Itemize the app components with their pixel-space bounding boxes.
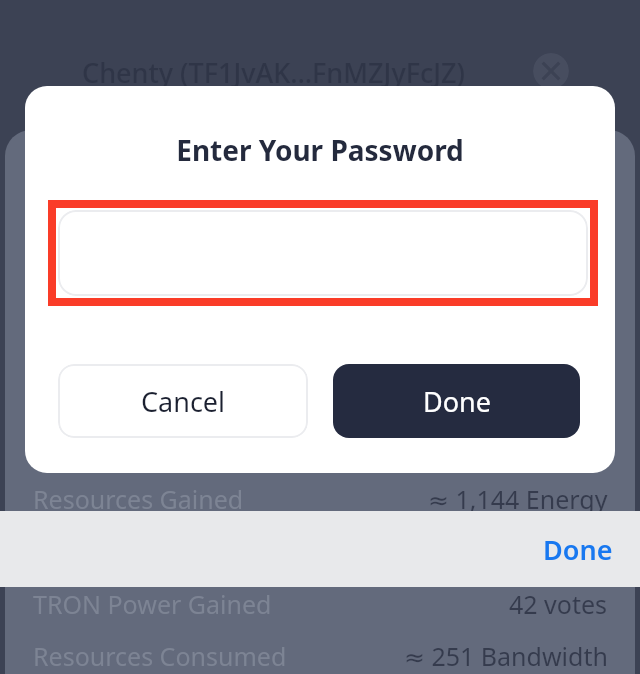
staticText: TRON Power Gained (33, 587, 272, 621)
button[interactable]: Close (533, 53, 569, 89)
staticText: ≈ 251 Bandwidth (404, 639, 608, 673)
staticText: Resources Gained (33, 482, 244, 516)
button[interactable]: Done (528, 523, 628, 576)
staticText: Cancel (141, 383, 226, 420)
staticText: Chenty (TF1JvAK…FnMZJyFcJZ) (82, 54, 465, 91)
button[interactable]: Cancel (58, 364, 308, 438)
staticText: Done (543, 531, 613, 568)
button[interactable]: Done (333, 364, 580, 438)
staticText: 42 votes (509, 587, 608, 621)
staticText: Resources Consumed (33, 639, 287, 673)
button[interactable] (58, 210, 588, 296)
staticText: Enter Your Password (25, 131, 615, 169)
staticText: ≈ 1,144 Energy (428, 482, 608, 516)
staticText: Done (423, 383, 491, 420)
